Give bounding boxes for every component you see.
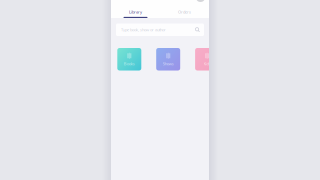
button[interactable]: Books bbox=[117, 48, 141, 70]
staticText: Books bbox=[124, 61, 135, 66]
staticText: Type book, show or author bbox=[121, 27, 166, 32]
button[interactable]: Library bbox=[111, 7, 160, 18]
button[interactable]: Profile bbox=[196, 0, 205, 9]
staticText: Shows bbox=[163, 61, 174, 66]
button[interactable]: Orders bbox=[160, 7, 209, 18]
button[interactable]: Kids bbox=[195, 48, 219, 70]
staticText: Kids bbox=[204, 61, 211, 66]
staticText: Library bbox=[129, 9, 142, 15]
button[interactable]: Shows bbox=[156, 48, 180, 70]
button[interactable]: Type book, show or author bbox=[116, 23, 204, 36]
staticText: Orders bbox=[178, 9, 191, 15]
